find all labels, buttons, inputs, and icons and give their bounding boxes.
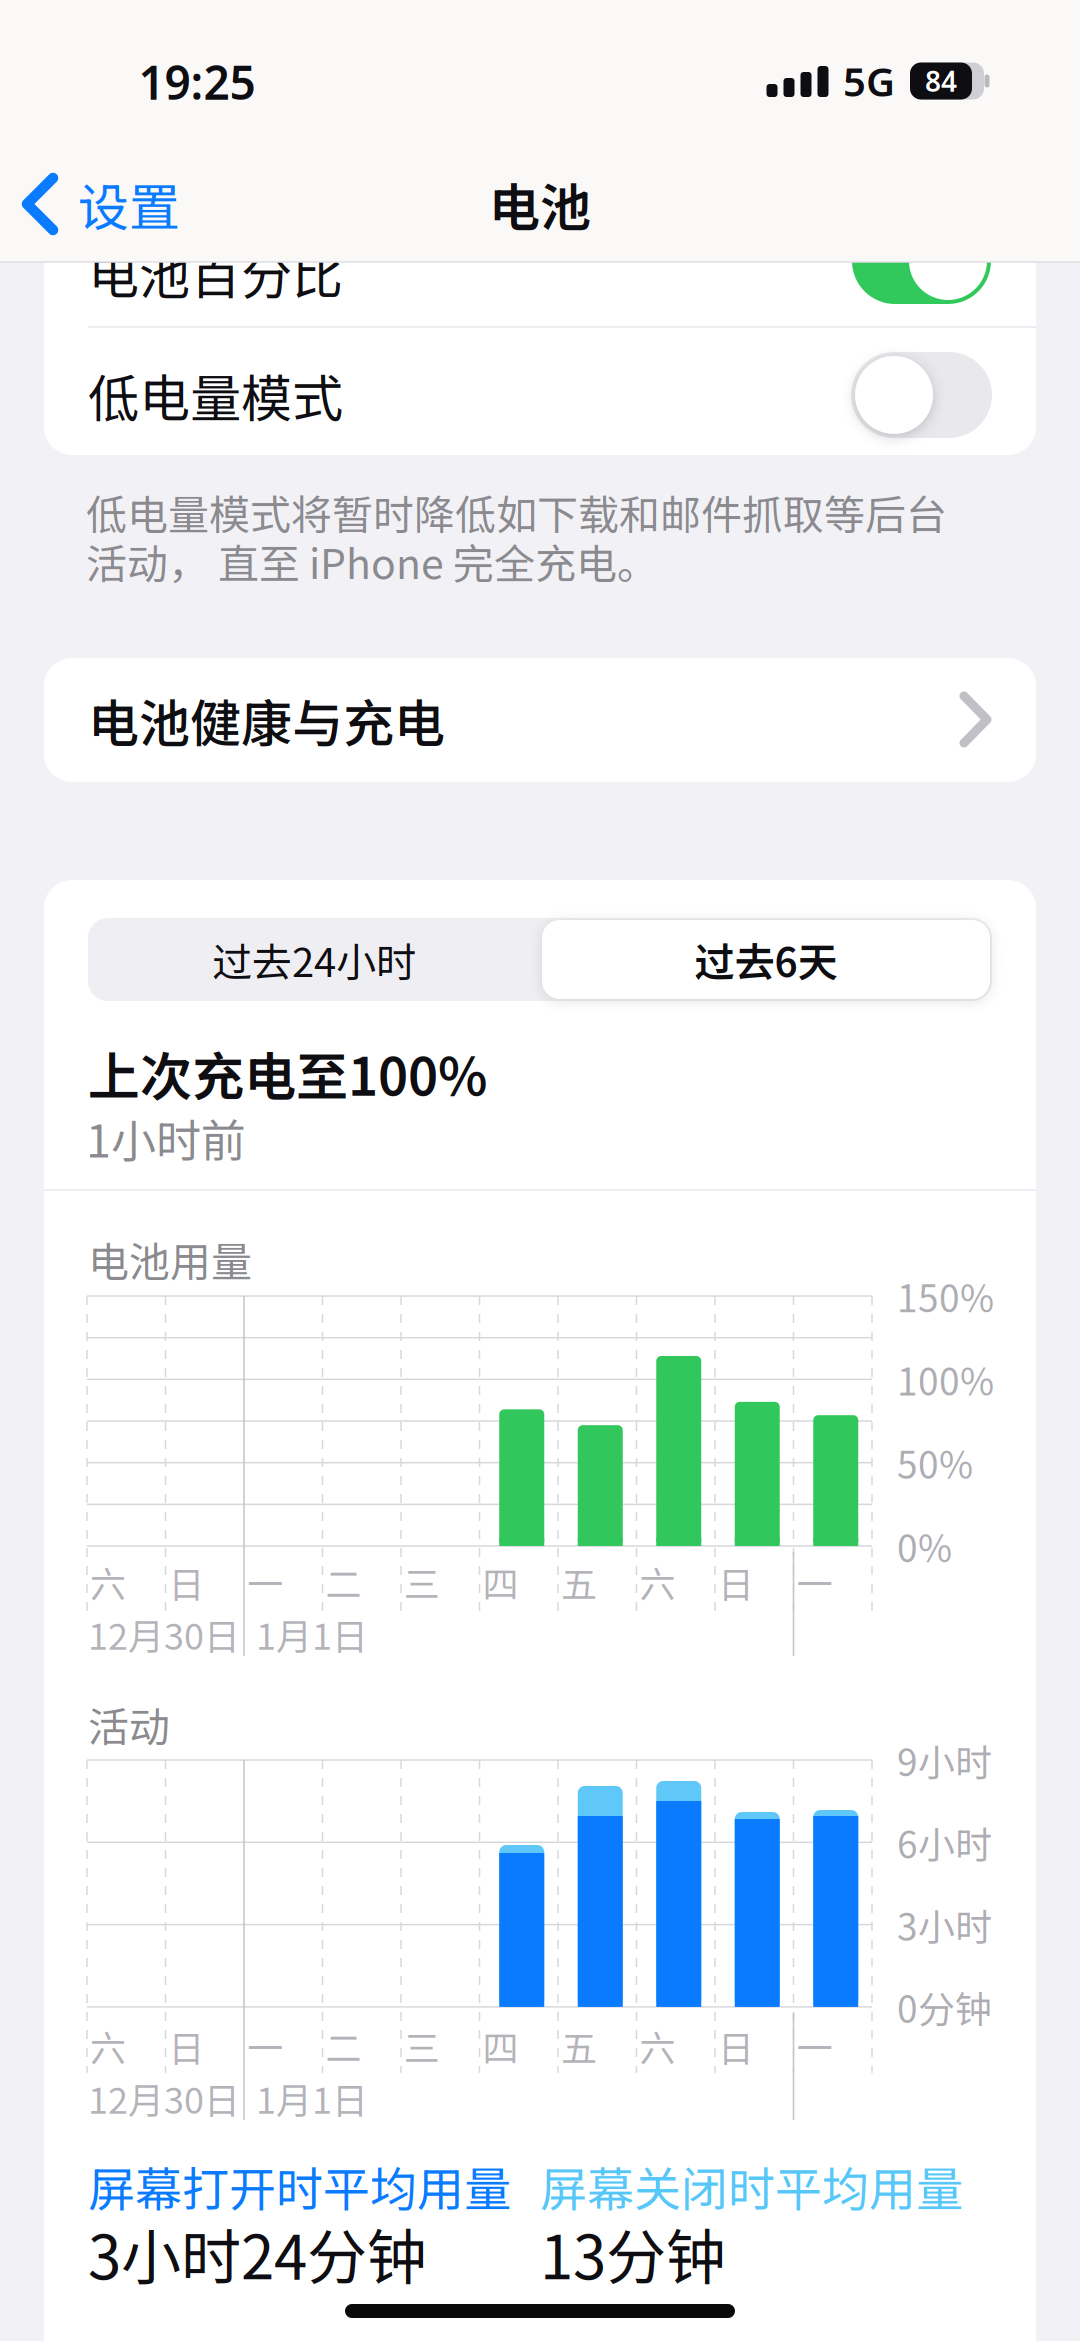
button[interactable]: 过去24小时 — [88, 918, 540, 1001]
staticText: 一 — [247, 2020, 283, 2072]
button[interactable] — [851, 352, 992, 438]
staticText: 日 — [168, 1556, 204, 1608]
staticText: 过去6天 — [694, 930, 837, 988]
staticText: 六 — [639, 2020, 675, 2072]
staticText: 0% — [897, 1519, 952, 1573]
staticText: 100% — [897, 1353, 994, 1406]
staticText: 六 — [90, 1556, 126, 1608]
staticText: 三 — [404, 1556, 440, 1608]
staticText: 50% — [897, 1436, 973, 1489]
button[interactable] — [852, 218, 991, 304]
staticText: 二 — [325, 2020, 361, 2072]
staticText: 6小时 — [897, 1815, 992, 1869]
staticText: 日 — [168, 2020, 204, 2072]
staticText: 屏幕关闭时平均用量 — [540, 2152, 963, 2220]
staticText: 3小时 — [897, 1898, 992, 1951]
staticText: 低电量模式 — [88, 358, 343, 432]
staticText: 13分钟 — [540, 2210, 726, 2296]
staticText: 3小时24分钟 — [88, 2210, 427, 2296]
staticText: 12月30日 — [88, 1608, 240, 1660]
staticText: 一 — [796, 1556, 832, 1608]
staticText: 屏幕打开时平均用量 — [88, 2152, 511, 2220]
staticText: 电池用量 — [88, 1229, 252, 1289]
staticText: 19:25 — [138, 51, 255, 113]
staticText: 12月30日 — [88, 2072, 240, 2124]
staticText: 二 — [325, 1556, 361, 1608]
staticText: 四 — [482, 2020, 518, 2072]
staticText: 电池健康与充电 — [88, 683, 445, 757]
staticText: 一 — [796, 2020, 832, 2072]
staticText: 五 — [561, 2020, 597, 2072]
staticText: 设置 — [78, 167, 180, 241]
staticText: 1小时前 — [86, 1105, 246, 1171]
staticText: 一 — [247, 1556, 283, 1608]
staticText: 电池 — [489, 167, 591, 241]
staticText: 日 — [718, 2020, 754, 2072]
button[interactable]: 设置 — [0, 149, 260, 259]
staticText: 0分钟 — [897, 1980, 992, 2034]
staticText: 上次充电至100% — [88, 1035, 487, 1111]
staticText: 六 — [90, 2020, 126, 2072]
button[interactable]: 过去6天 — [542, 920, 990, 999]
staticText: 84 — [925, 62, 957, 100]
staticText: 六 — [639, 1556, 675, 1608]
staticText: 五 — [561, 1556, 597, 1608]
staticText: 低电量模式将暂时降低如下载和邮件抓取等后台 — [86, 482, 947, 542]
staticText: 过去24小时 — [212, 930, 416, 988]
staticText: 9小时 — [897, 1733, 992, 1787]
staticText: 5G — [843, 54, 895, 107]
staticText: 1月1日 — [256, 1608, 368, 1660]
staticText: 四 — [482, 1556, 518, 1608]
staticText: 电池百分比 — [88, 235, 343, 309]
button[interactable]: 电池健康与充电 — [44, 658, 1036, 782]
staticText: 三 — [404, 2020, 440, 2072]
staticText: 活动， 直至 iPhone 完全充电。 — [86, 531, 658, 591]
staticText: 150% — [897, 1269, 994, 1323]
staticText: 1月1日 — [256, 2072, 368, 2124]
staticText: 日 — [718, 1556, 754, 1608]
staticText: 活动 — [88, 1694, 170, 1754]
